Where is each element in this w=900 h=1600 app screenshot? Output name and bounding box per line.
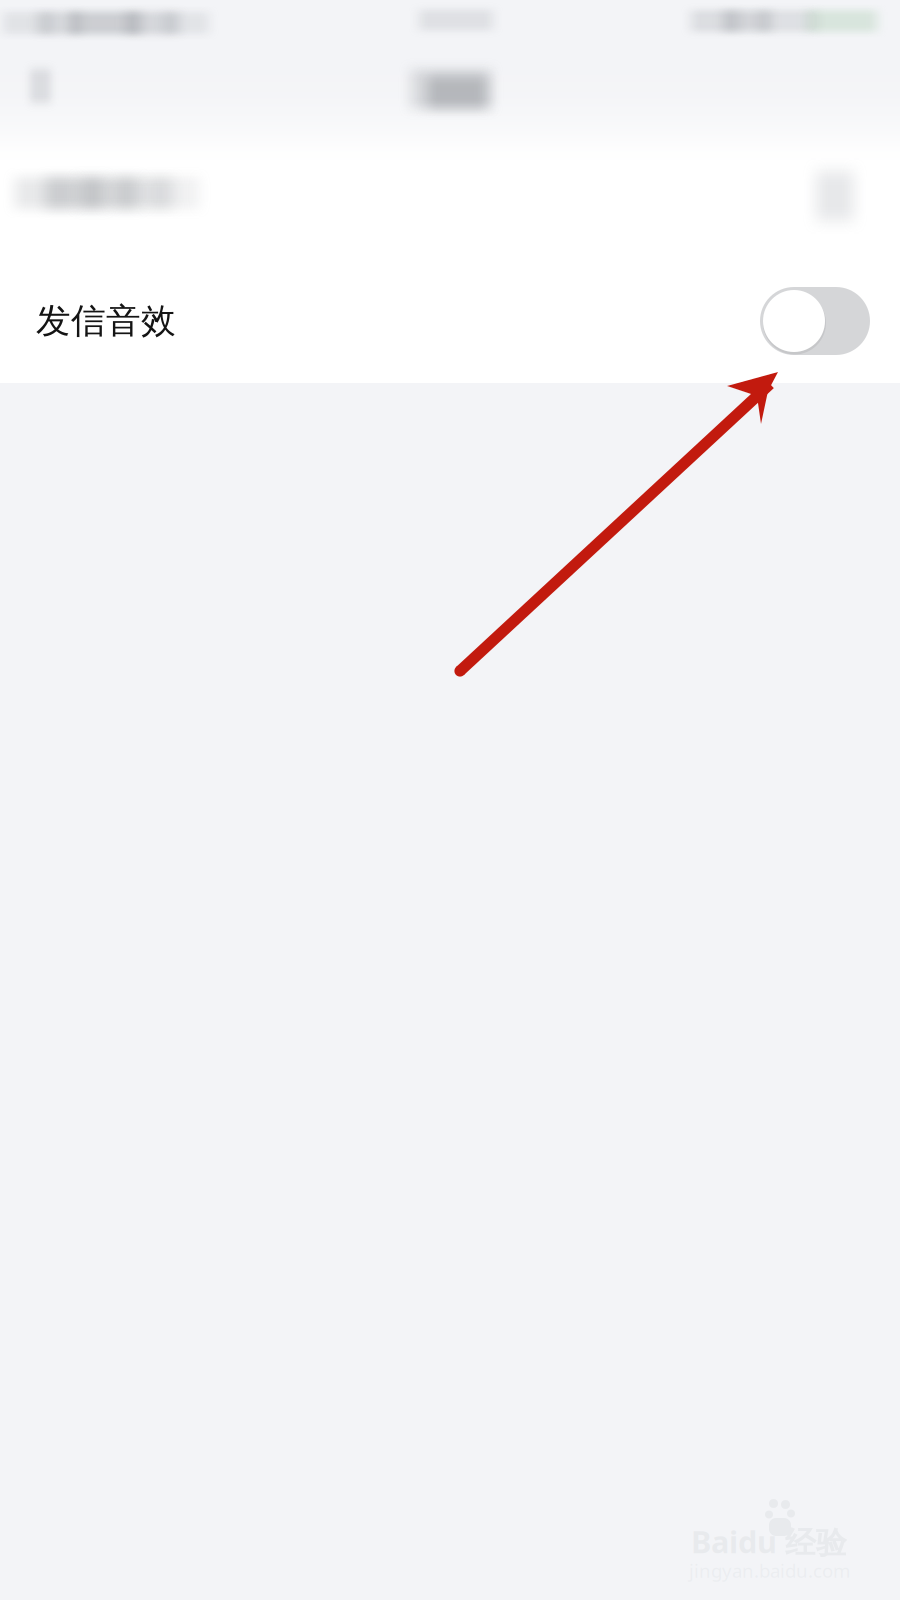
staticText: Baidu 经验: [691, 1521, 847, 1562]
staticText: 发信音效: [36, 300, 176, 342]
button[interactable]: 发信音效: [0, 260, 900, 382]
button[interactable]: Back: [22, 60, 59, 112]
button[interactable]: Settings row: [0, 0, 900, 1600]
